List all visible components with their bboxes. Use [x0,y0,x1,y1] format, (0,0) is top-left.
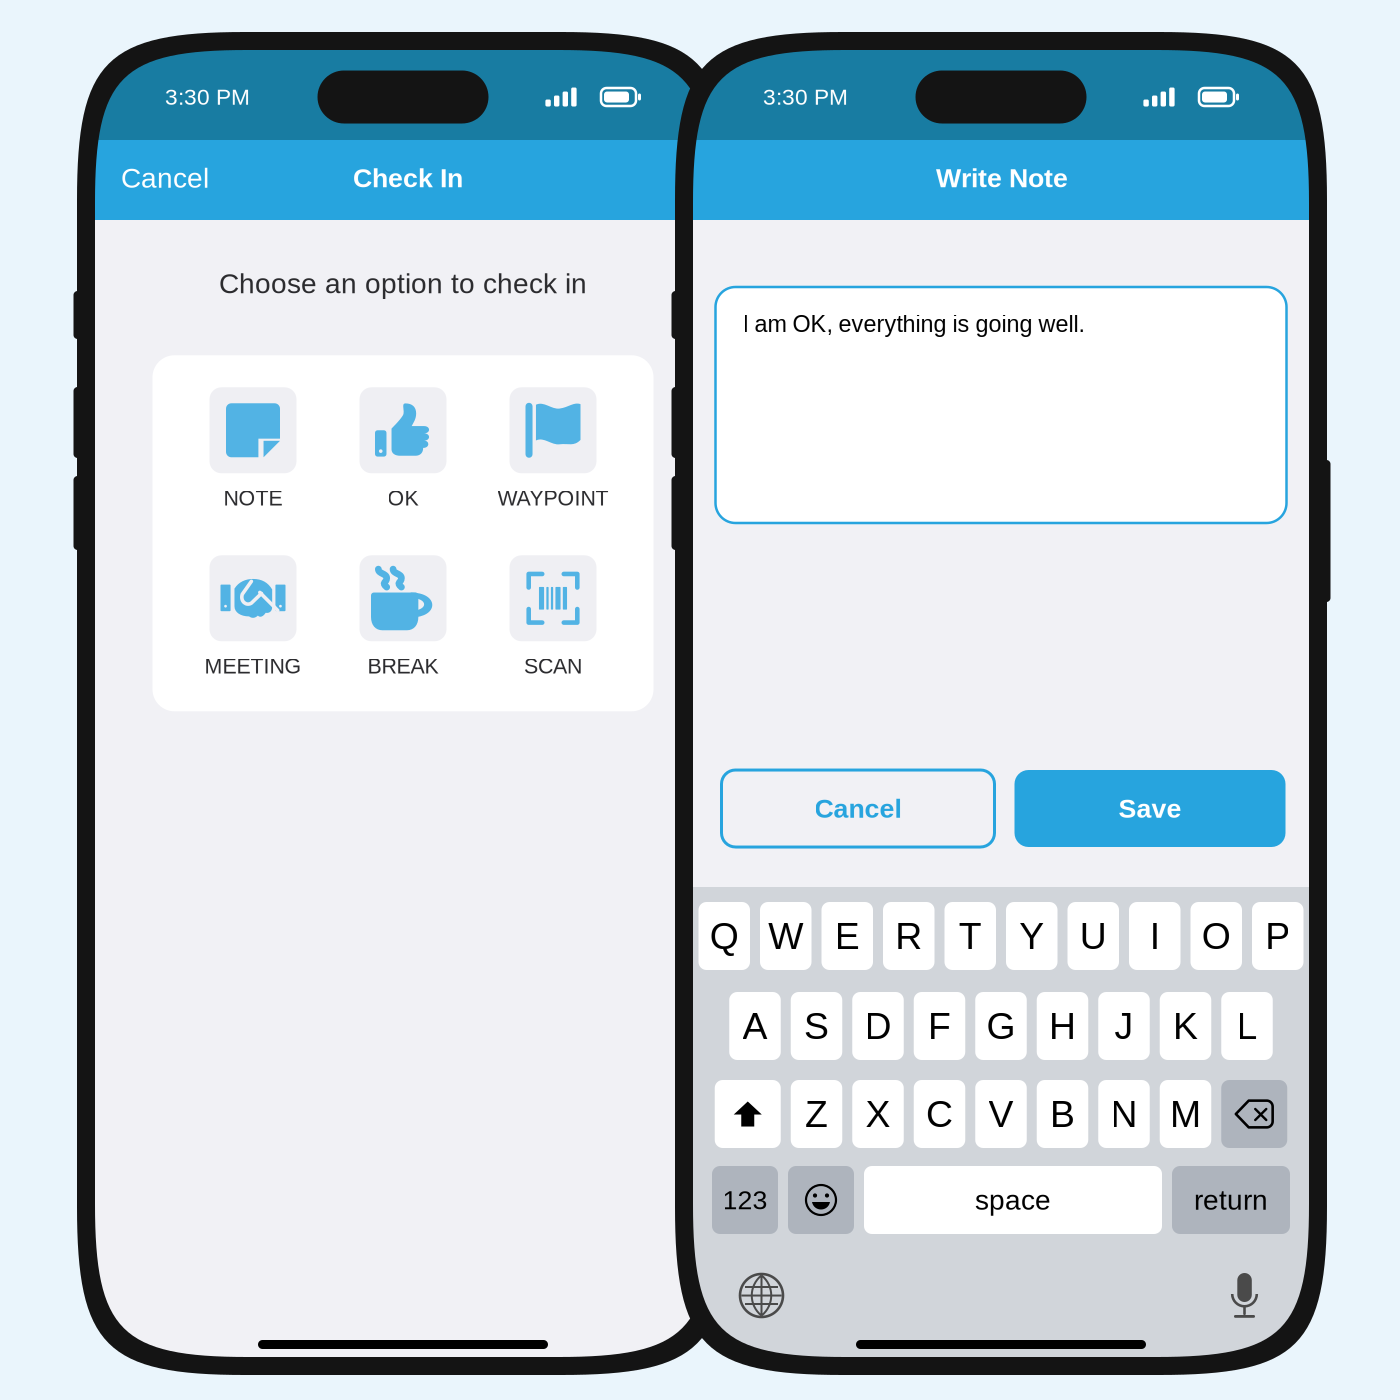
staticText: C [926,1093,953,1135]
staticText: M [1170,1093,1201,1135]
staticText: Y [1019,915,1044,957]
staticText: A [742,1005,767,1047]
staticText: WAYPOINT [497,486,608,510]
staticText: Cancel [814,794,901,823]
staticText: T [959,915,982,957]
button[interactable]: R [883,902,934,970]
staticText: OK [387,486,418,510]
staticText: 3:30 PM [763,84,848,110]
staticText: 3:30 PM [165,84,250,110]
button[interactable]: C [914,1080,965,1148]
button[interactable]: B [1037,1080,1088,1148]
button[interactable]: NOTE [178,387,328,514]
staticText: K [1173,1005,1198,1047]
button[interactable]: Switch keyboard [731,1265,792,1326]
button[interactable]: K [1160,992,1211,1060]
button[interactable]: N [1098,1080,1150,1148]
button[interactable]: X [852,1080,904,1148]
button[interactable] [788,1166,854,1234]
button[interactable]: Z [791,1080,842,1148]
staticText: Cancel [121,162,209,194]
staticText: return [1194,1184,1268,1216]
button[interactable]: A [729,992,781,1060]
staticText: N [1110,1093,1137,1135]
staticText: Save [1118,794,1181,823]
staticText: Q [710,915,739,957]
staticText: I [1150,915,1160,957]
staticText: L [1236,1005,1257,1047]
staticText: J [1114,1005,1133,1047]
button[interactable]: SCAN [478,555,628,682]
staticText: Z [805,1093,828,1135]
staticText: NOTE [223,486,282,510]
staticText: MEETING [204,654,301,678]
button[interactable]: F [914,992,965,1060]
button[interactable]: V [975,1080,1027,1148]
button[interactable]: MEETING [178,555,328,682]
staticText: P [1265,915,1290,957]
button[interactable]: U [1067,902,1119,970]
staticText: Write Note [936,163,1068,193]
staticText: V [988,1093,1013,1135]
staticText: U [1080,915,1107,957]
button[interactable]: BREAK [328,555,478,682]
staticText: 123 [722,1185,767,1215]
button[interactable]: Dictate [1221,1264,1268,1327]
button[interactable]: 123 [712,1166,778,1234]
staticText: Choose an option to check in [219,268,587,299]
button[interactable]: W [760,902,811,970]
staticText: Check In [353,163,463,193]
staticText: BREAK [367,654,438,678]
button[interactable]: S [791,992,842,1060]
button[interactable]: P [1252,902,1303,970]
button[interactable]: O [1190,902,1242,970]
button[interactable]: D [852,992,904,1060]
staticText: space [975,1184,1051,1216]
button[interactable]: J [1098,992,1150,1060]
staticText: H [1049,1005,1076,1047]
staticText: O [1202,915,1231,957]
staticText: G [986,1005,1015,1047]
button[interactable]: H [1037,992,1088,1060]
button[interactable]: Cancel [111,155,219,205]
button[interactable]: Save [1014,770,1285,847]
staticText: E [835,915,860,957]
staticText: I am OK, everything is going well. [742,311,1084,337]
button[interactable]: L [1221,992,1273,1060]
button[interactable]: E [821,902,873,970]
button[interactable]: Q [698,902,750,970]
button[interactable]: I [1129,902,1180,970]
staticText: D [864,1005,891,1047]
staticText: F [928,1005,951,1047]
button[interactable]: G [975,992,1027,1060]
staticText: B [1050,1093,1075,1135]
button[interactable]: WAYPOINT [478,387,628,514]
button[interactable] [1221,1080,1287,1148]
staticText: R [895,915,922,957]
button[interactable]: Y [1006,902,1057,970]
button[interactable]: space [864,1166,1162,1234]
button[interactable] [715,1080,781,1148]
button[interactable]: Cancel [721,770,994,847]
button[interactable]: return [1172,1166,1290,1234]
button[interactable]: M [1160,1080,1211,1148]
staticText: X [865,1093,890,1135]
staticText: SCAN [524,654,582,678]
button[interactable]: OK [328,387,478,514]
button[interactable]: T [944,902,996,970]
staticText: S [804,1005,829,1047]
staticText: W [768,915,803,957]
